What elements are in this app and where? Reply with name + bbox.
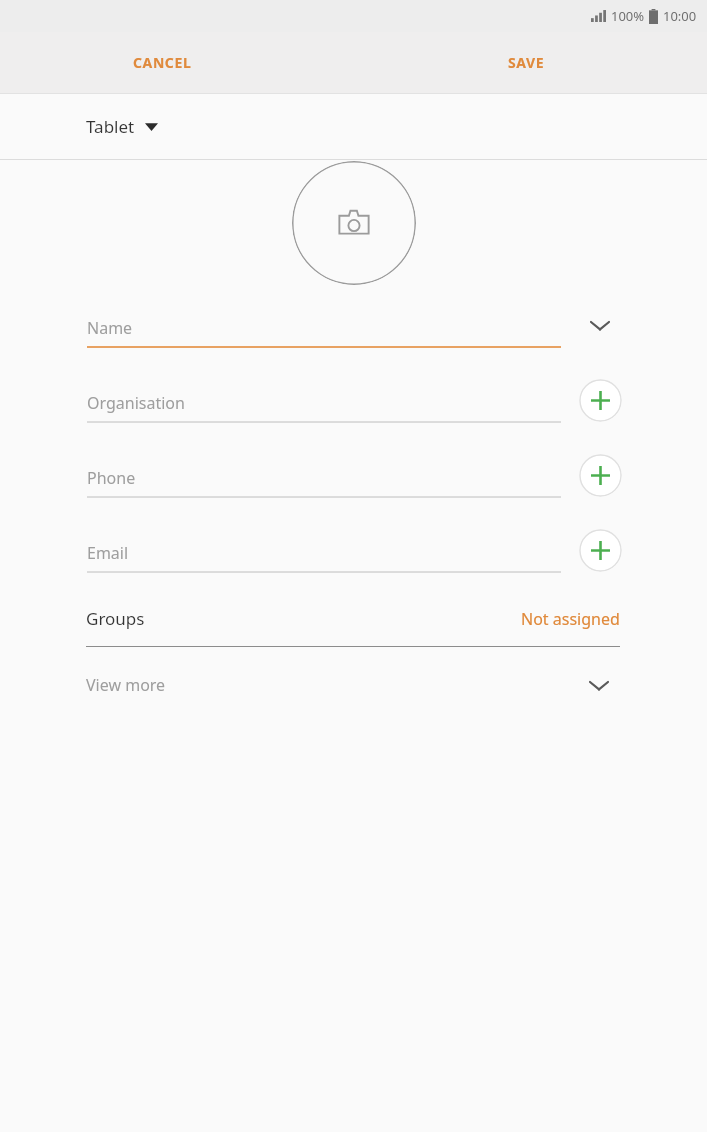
button[interactable]: Expand more fields (577, 663, 621, 707)
staticText: Organisation (87, 392, 185, 414)
button[interactable]: Groups (0, 595, 707, 648)
button[interactable]: Add organisation (578, 378, 622, 422)
staticText: Phone (87, 467, 136, 489)
staticText: Groups (86, 607, 145, 630)
button[interactable]: Email (0, 520, 707, 595)
staticText: Tablet (86, 115, 135, 138)
staticText: Email (87, 542, 129, 564)
button[interactable]: Add photo (292, 161, 416, 285)
button[interactable]: CANCEL (117, 45, 208, 80)
button[interactable]: View more (0, 648, 707, 722)
button[interactable]: Organisation (0, 370, 707, 445)
staticText: Name (87, 317, 133, 339)
button[interactable]: Add phone (578, 453, 622, 497)
button[interactable]: Tablet (0, 94, 707, 159)
button[interactable]: Add email (578, 528, 622, 572)
button[interactable]: Phone (0, 445, 707, 520)
staticText: View more (86, 674, 166, 696)
staticText: 10:00 (663, 7, 697, 25)
staticText: CANCEL (133, 53, 192, 72)
staticText: 100% (611, 7, 645, 25)
button[interactable]: Expand name fields (578, 303, 622, 347)
button[interactable]: Name (0, 295, 707, 370)
button[interactable]: SAVE (492, 45, 561, 80)
staticText: Not assigned (521, 608, 620, 630)
staticText: SAVE (508, 53, 545, 72)
